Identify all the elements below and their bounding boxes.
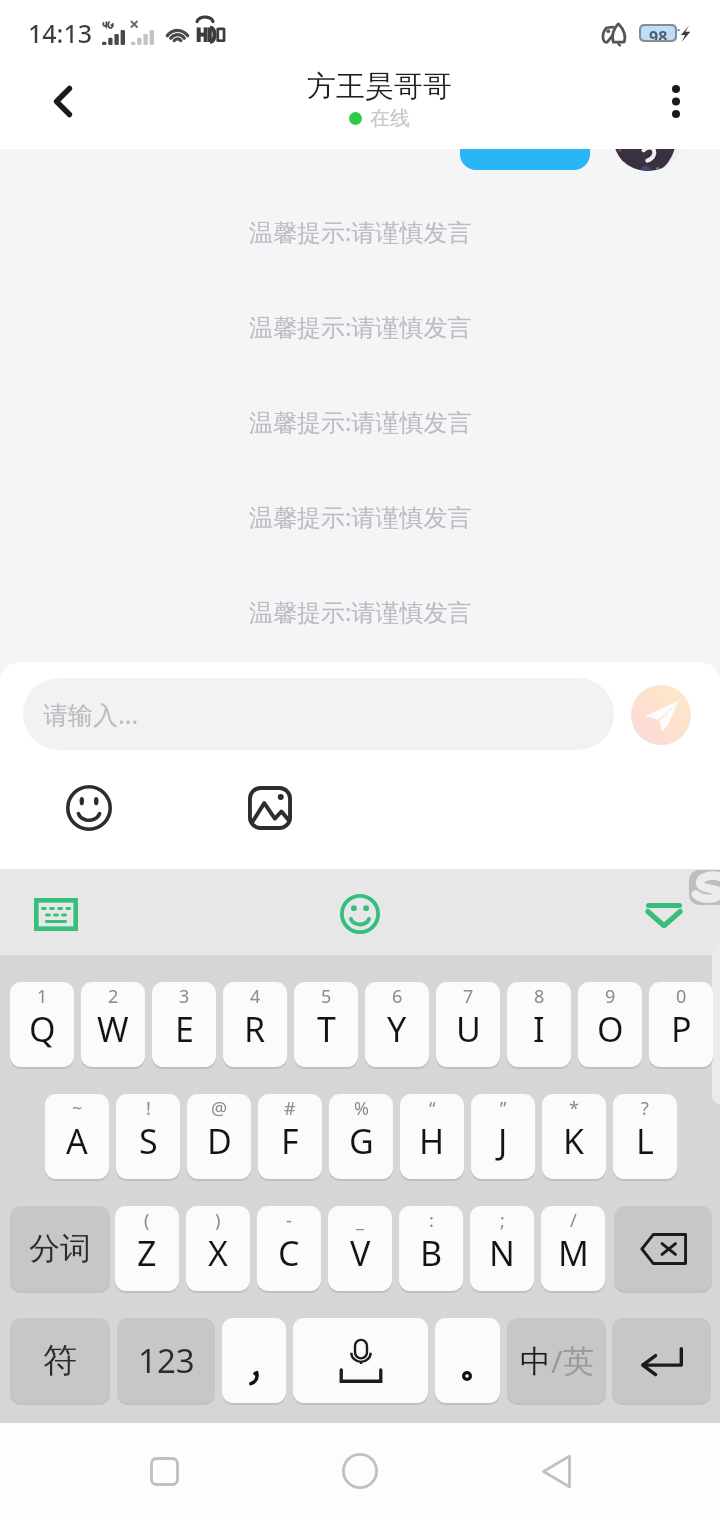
button[interactable]: 中 [507,1318,606,1403]
button[interactable]: ( [115,1206,179,1291]
button[interactable]: 请输入... [23,678,614,750]
button[interactable] [435,1318,500,1403]
button[interactable]: 0 [649,982,713,1067]
button[interactable]: ~ [45,1094,109,1179]
button[interactable]: 1 [10,982,74,1067]
button[interactable]: Hide keyboard [636,886,692,942]
button[interactable]: Send [631,685,691,745]
staticText: 5 [321,984,332,1009]
button[interactable]: % [329,1094,393,1179]
button[interactable] [614,1206,712,1291]
staticText: N [489,1230,515,1276]
staticText: 温馨提示:请谨慎发言 [249,595,472,628]
staticText: ! [146,1096,151,1121]
button[interactable]: 8 [507,982,571,1067]
button[interactable]: 7 [436,982,500,1067]
staticText: F [281,1118,299,1164]
button[interactable]: ? [613,1094,677,1179]
staticText: A [66,1118,88,1164]
staticText: L [636,1118,654,1164]
button[interactable]: # [258,1094,322,1179]
staticText: ~ [72,1096,83,1121]
button[interactable]: @ [187,1094,251,1179]
button[interactable]: Back [526,1441,586,1501]
button[interactable]: _ [328,1206,392,1291]
staticText: - [286,1208,292,1233]
staticText: _ [356,1208,364,1233]
button[interactable]: 3 [152,982,216,1067]
staticText: ( [144,1208,150,1233]
staticText: J [498,1118,508,1164]
button[interactable] [612,1318,711,1403]
button[interactable]: 分词 [10,1206,110,1291]
button[interactable]: : [399,1206,463,1291]
button[interactable]: ) [186,1206,250,1291]
staticText: / [570,1208,577,1233]
staticText: G [349,1118,374,1164]
button[interactable]: 5 [294,982,358,1067]
staticText: E [175,1006,194,1052]
staticText: # [284,1096,296,1121]
button[interactable]: Home [330,1441,390,1501]
staticText: H [419,1118,445,1164]
staticText: ? [641,1096,649,1121]
staticText: I [533,1006,545,1052]
staticText: 8 [534,984,545,1009]
staticText: R [244,1006,266,1052]
button[interactable] [293,1318,428,1403]
button[interactable]: Emoji [61,780,117,836]
staticText: 9 [605,984,616,1009]
button[interactable]: ” [471,1094,535,1179]
staticText: ” [500,1096,507,1121]
staticText: 英 [563,1342,594,1381]
staticText: * [569,1096,579,1121]
staticText: 0 [676,984,687,1009]
staticText: 请输入... [43,697,139,731]
staticText: 6 [392,984,403,1009]
staticText: B [420,1230,443,1276]
staticText: 在线 [370,106,410,131]
staticText: 123 [138,1338,195,1383]
staticText: 4 [250,984,261,1009]
staticText: C [278,1230,300,1276]
button[interactable] [222,1318,286,1403]
button[interactable]: 4 [223,982,287,1067]
button[interactable]: ; [470,1206,534,1291]
staticText: P [671,1006,692,1052]
button[interactable]: 9 [578,982,642,1067]
staticText: % [354,1096,369,1121]
staticText: U [456,1006,481,1052]
staticText: T [317,1006,336,1052]
staticText: 2 [108,984,119,1009]
button[interactable]: Image [242,780,298,836]
button[interactable]: Keyboard layout [28,886,84,942]
staticText: 温馨提示:请谨慎发言 [249,215,472,248]
staticText: 分词 [29,1229,91,1268]
staticText: 符 [43,1339,77,1382]
staticText: O [597,1006,624,1052]
button[interactable]: 符 [10,1318,110,1403]
button[interactable]: * [542,1094,606,1179]
staticText: @ [211,1096,228,1121]
button[interactable]: Back [25,63,101,139]
staticText: Z [137,1230,157,1276]
staticText: K [563,1118,585,1164]
staticText: Y [387,1006,407,1052]
staticText: V [350,1230,371,1276]
button[interactable]: 123 [117,1318,215,1403]
staticText: 1 [37,984,48,1009]
button[interactable]: 2 [81,982,145,1067]
staticText: 方王昊哥哥 [307,68,452,105]
button[interactable]: More options [638,63,714,139]
button[interactable]: ! [116,1094,180,1179]
button[interactable]: 6 [365,982,429,1067]
button[interactable]: Recents [134,1441,194,1501]
button[interactable]: - [257,1206,321,1291]
button[interactable]: / [541,1206,605,1291]
staticText: 3 [179,984,190,1009]
button[interactable]: “ [400,1094,464,1179]
staticText: 温馨提示:请谨慎发言 [249,310,472,343]
button[interactable]: Emoji [332,886,388,942]
staticText: M [558,1230,589,1276]
staticText: 98 [649,26,668,40]
